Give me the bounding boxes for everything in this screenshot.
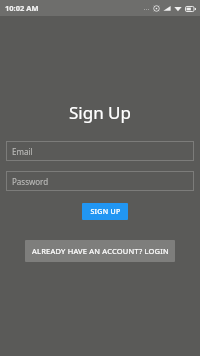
staticText: Password	[12, 176, 49, 187]
staticText: 10:02 AM	[5, 3, 39, 13]
button[interactable]: Email	[6, 141, 194, 161]
staticText: ALREADY HAVE AN ACCOUNT? LOGIN	[32, 246, 169, 256]
button[interactable]: SIGN UP	[82, 203, 128, 220]
staticText: Email	[12, 146, 33, 157]
staticText: Sign Up	[69, 101, 131, 124]
staticText: SIGN UP	[90, 207, 121, 217]
button[interactable]: ALREADY HAVE AN ACCOUNT? LOGIN	[25, 240, 175, 262]
button[interactable]: Password	[6, 171, 194, 191]
